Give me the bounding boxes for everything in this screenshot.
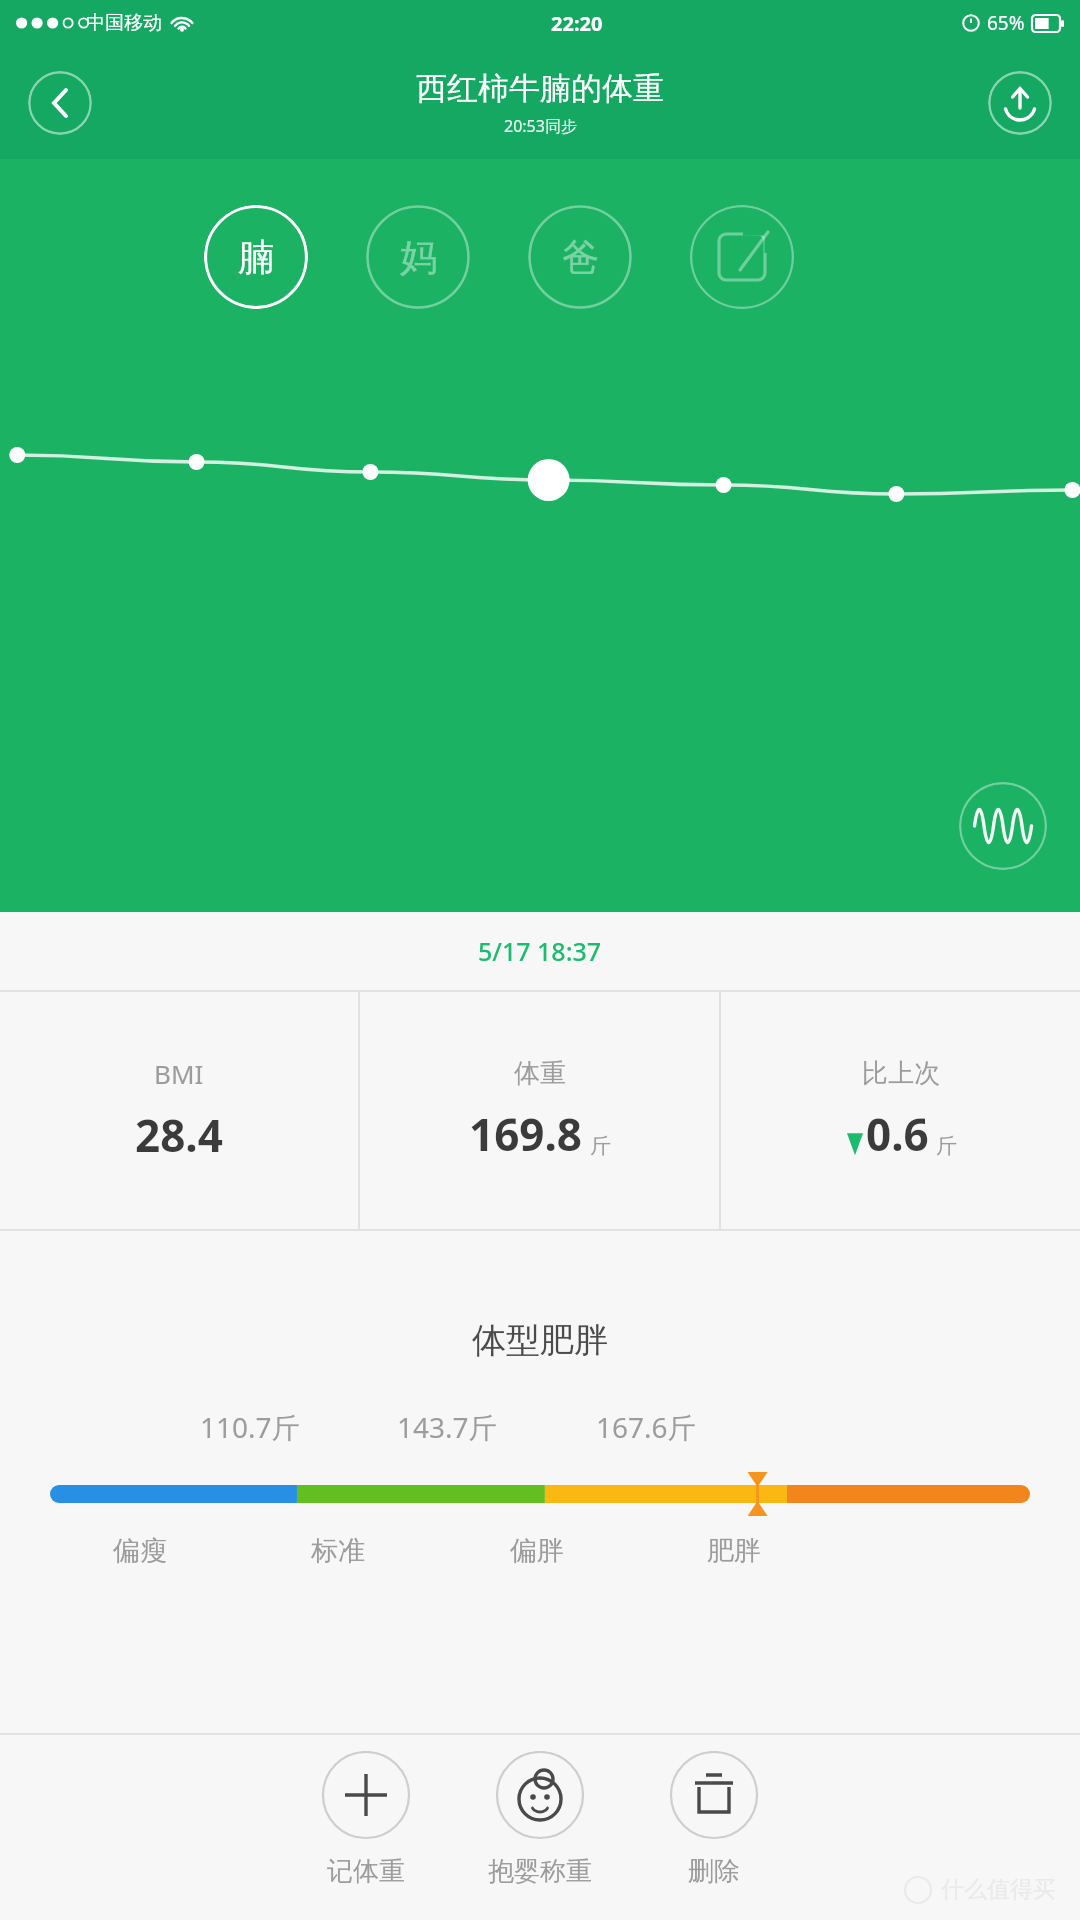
staticText: 爸 <box>562 234 599 281</box>
button[interactable]: 妈 <box>366 205 470 309</box>
staticText: 体型肥胖 <box>472 1319 608 1362</box>
staticText: 什么值得买 <box>941 1875 1056 1904</box>
button[interactable]: 比上次 <box>721 992 1080 1229</box>
staticText: 110.7斤 <box>200 1408 300 1446</box>
staticText: 65% <box>987 10 1025 36</box>
staticText: 0.6 <box>866 1104 929 1164</box>
button[interactable]: 记体重 <box>312 1751 420 1888</box>
staticText: 妈 <box>400 234 437 281</box>
staticText: 斤 <box>590 1133 611 1159</box>
staticText: 西红柿牛腩的体重 <box>416 69 664 108</box>
staticText: 143.7斤 <box>397 1408 497 1446</box>
button[interactable]: Share <box>988 71 1052 135</box>
staticText: 中国移动 <box>86 11 162 35</box>
staticText: 抱婴称重 <box>488 1855 592 1888</box>
staticText: 偏胖 <box>510 1534 564 1568</box>
staticText: 标准 <box>311 1534 365 1568</box>
staticText: 删除 <box>688 1855 740 1888</box>
staticText: 斤 <box>936 1133 957 1159</box>
staticText: 22:20 <box>551 10 603 37</box>
button[interactable]: 删除 <box>660 1751 768 1888</box>
staticText: 167.6斤 <box>596 1408 696 1446</box>
button[interactable]: 爸 <box>528 205 632 309</box>
staticText: 20:53同步 <box>504 115 577 137</box>
button[interactable]: 抱婴称重 <box>478 1751 602 1888</box>
button[interactable]: 腩 <box>204 205 308 309</box>
staticText: 169.8 <box>469 1104 583 1164</box>
staticText: 28.4 <box>135 1105 223 1165</box>
staticText: 记体重 <box>327 1855 405 1888</box>
staticText: 5/17 18:37 <box>478 934 602 968</box>
button[interactable]: Back <box>28 71 92 135</box>
button[interactable]: 体重 <box>360 992 719 1229</box>
staticText: 肥胖 <box>707 1534 761 1568</box>
staticText: BMI <box>154 1056 204 1091</box>
staticText: 腩 <box>238 234 275 281</box>
button[interactable]: BMI <box>0 992 358 1229</box>
button[interactable]: Edit members <box>690 205 794 309</box>
button[interactable]: Body composition <box>959 782 1047 870</box>
staticText: 比上次 <box>862 1057 940 1090</box>
staticText: 体重 <box>514 1057 566 1090</box>
staticText: 偏瘦 <box>113 1534 167 1568</box>
